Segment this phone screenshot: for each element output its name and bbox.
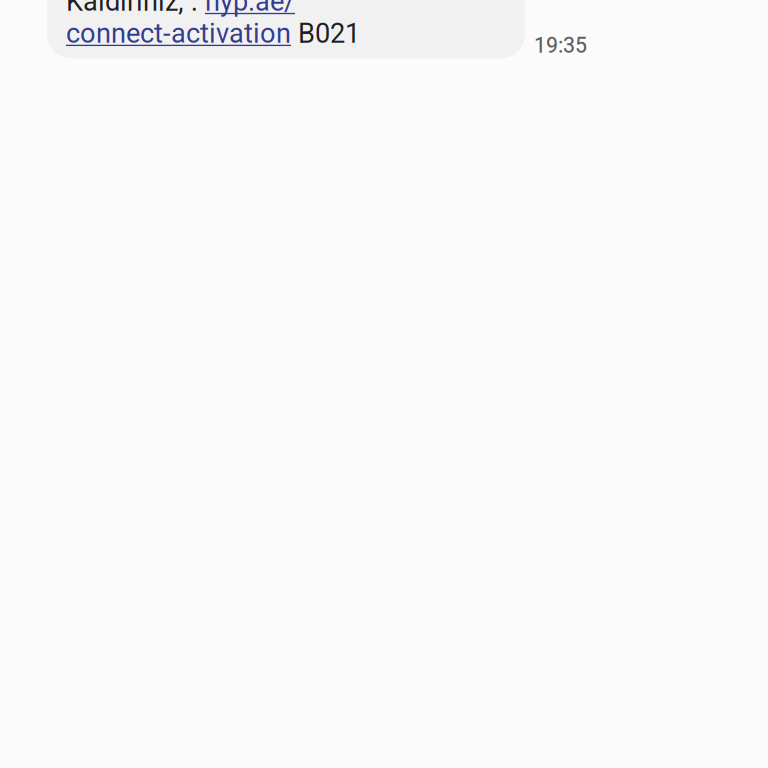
- staticText: Sayın müşterimiz, hattınıza tanımlı olan…: [66, 0, 483, 49]
- staticText: 19:35: [534, 33, 587, 58]
- button[interactable]: Sayın müşterimiz, hattınıza tanımlı olan…: [47, 0, 525, 58]
